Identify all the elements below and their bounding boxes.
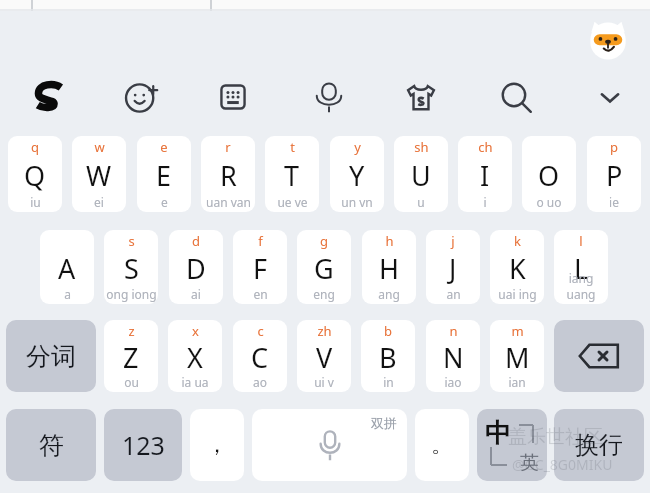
button[interactable]: Keyboard layout (209, 73, 257, 121)
button[interactable]: w (72, 136, 126, 212)
button[interactable]: g (297, 230, 351, 304)
staticText: D (186, 250, 206, 287)
button[interactable]: c (233, 320, 287, 392)
button[interactable]: ， (190, 409, 244, 481)
button[interactable]: zh (297, 320, 351, 392)
button[interactable]: e (137, 136, 191, 212)
staticText: m (511, 322, 524, 340)
button[interactable]: p (587, 136, 641, 212)
button[interactable]: Collapse keyboard (586, 73, 634, 121)
staticText: E (156, 157, 172, 194)
button[interactable]: Search (492, 73, 540, 121)
staticText: 分词 (26, 341, 76, 372)
button[interactable]: Sogou (26, 73, 74, 121)
button[interactable]: m (490, 320, 544, 392)
button[interactable]: 分词 (6, 320, 96, 392)
staticText: @GC_8G0MIKU (512, 455, 613, 474)
button[interactable]: 换行 (554, 409, 644, 481)
button[interactable]: n (426, 320, 480, 392)
staticText: p (610, 138, 618, 156)
staticText: iang uang (554, 270, 608, 302)
button[interactable]: f (233, 230, 287, 304)
staticText: in (383, 374, 394, 390)
button[interactable]: r (201, 136, 255, 212)
staticText: sh (414, 138, 429, 156)
staticText: W (86, 157, 112, 194)
button[interactable]: l (554, 230, 608, 304)
staticText: z (128, 322, 135, 340)
staticText: h (385, 232, 394, 250)
button[interactable]: Assistant (587, 20, 629, 62)
staticText: K (509, 250, 526, 287)
button[interactable]: k (490, 230, 544, 304)
button[interactable]: Emoji (117, 73, 165, 121)
staticText: r (225, 138, 231, 156)
staticText: U (411, 157, 431, 194)
staticText: Y (349, 157, 365, 194)
staticText: L (574, 250, 589, 287)
staticText: ia ua (181, 374, 209, 390)
button[interactable]: A (40, 230, 94, 304)
staticText: ao (253, 374, 267, 390)
staticText: T (284, 157, 300, 194)
button[interactable]: b (361, 320, 415, 392)
staticText: 符 (39, 430, 64, 461)
button[interactable]: O (522, 136, 576, 212)
staticText: 123 (122, 428, 165, 462)
staticText: ch (478, 138, 493, 156)
staticText: o uo (536, 194, 562, 210)
button[interactable]: j (426, 230, 480, 304)
button[interactable]: z (104, 320, 158, 392)
staticText: w (94, 138, 105, 156)
staticText: S (124, 250, 139, 287)
staticText: J (449, 250, 457, 287)
button[interactable]: sh (394, 136, 448, 212)
button[interactable]: 中 (477, 409, 547, 481)
button[interactable]: x (168, 320, 222, 392)
staticText: uai ing (498, 286, 537, 302)
staticText: H (379, 250, 400, 287)
staticText: n (449, 322, 458, 340)
staticText: en (253, 286, 268, 302)
button[interactable]: Themes (397, 73, 445, 121)
staticText: e (161, 194, 168, 210)
button[interactable]: y (330, 136, 384, 212)
staticText: t (290, 138, 295, 156)
button[interactable]: ch (458, 136, 512, 212)
button[interactable]: Voice input (305, 73, 353, 121)
button[interactable]: q (8, 136, 62, 212)
button[interactable]: 符 (6, 409, 96, 481)
staticText: an (446, 286, 461, 302)
staticText: s (128, 232, 135, 250)
button[interactable]: 。 (415, 409, 469, 481)
staticText: f (258, 232, 263, 250)
staticText: C (251, 339, 269, 376)
staticText: V (316, 339, 333, 376)
staticText: uan van (206, 194, 251, 210)
button[interactable]: Space (252, 409, 407, 481)
staticText: k (514, 232, 521, 250)
button[interactable]: d (169, 230, 223, 304)
staticText: A (58, 250, 76, 287)
button[interactable]: h (362, 230, 416, 304)
staticText: iu (30, 194, 41, 210)
staticText: zh (317, 322, 332, 340)
staticText: ue ve (277, 194, 308, 210)
staticText: i (483, 194, 487, 210)
button[interactable]: t (265, 136, 319, 212)
staticText: j (451, 232, 455, 250)
staticText: Q (24, 157, 46, 194)
staticText: e (160, 138, 168, 156)
staticText: 。 (431, 431, 453, 459)
button[interactable]: 123 (104, 409, 182, 481)
staticText: 双拼 (371, 415, 397, 431)
button[interactable]: s (104, 230, 158, 304)
staticText: P (606, 157, 623, 194)
staticText: iao (444, 374, 462, 390)
staticText: ou (124, 374, 139, 390)
staticText: ， (206, 431, 228, 459)
staticText: 盖乐世社区 (508, 425, 603, 449)
staticText: y (354, 138, 361, 156)
staticText: ui v (314, 374, 334, 390)
button[interactable]: Backspace (554, 320, 644, 392)
